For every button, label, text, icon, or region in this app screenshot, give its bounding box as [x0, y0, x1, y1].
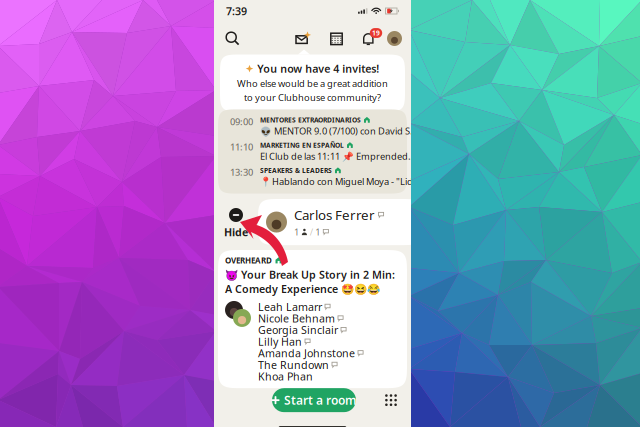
staticText: Nicole Behnam: [258, 311, 335, 325]
staticText: 📍Hablando con Miguel Moya - "Lid…: [260, 175, 420, 188]
staticText: OVERHEARD: [225, 255, 272, 266]
staticText: MENTORES EXTRAORDINARIOS: [260, 115, 361, 124]
staticText: Lilly Han: [258, 334, 302, 349]
staticText: to your Clubhouse community?: [244, 91, 381, 103]
staticText: Khoa Phan: [258, 369, 313, 383]
staticText: 11:10: [230, 141, 253, 153]
staticText: El Club de las 11:11 📌 Emprended…: [260, 150, 415, 162]
staticText: 1: [315, 226, 320, 238]
staticText: Start a room: [284, 392, 357, 408]
button[interactable]: Notifications: [361, 31, 376, 46]
button[interactable]: Hide: [214, 199, 258, 239]
staticText: 19: [372, 29, 380, 37]
staticText: /: [310, 226, 313, 238]
staticText: 09:00: [230, 115, 253, 128]
staticText: The Rundown: [258, 358, 329, 372]
staticText: SPEAKERS & LEADERS: [260, 166, 332, 175]
button[interactable]: More: [381, 390, 401, 410]
staticText: 13:30: [230, 166, 253, 178]
staticText: Carlos Ferrer: [294, 206, 375, 224]
button[interactable]: Invites: [293, 29, 312, 48]
staticText: Amanda Johnstone: [258, 346, 355, 360]
staticText: Who else would be a great addition: [237, 77, 388, 90]
staticText: 😈 Your Break Up Story in 2 Min: A Comedy…: [225, 268, 395, 296]
button[interactable]: 13:30: [231, 166, 403, 188]
staticText: Georgia Sinclair: [258, 323, 338, 337]
staticText: 7:39: [226, 4, 247, 18]
staticText: 👽 MENTOR 9.0 (7/100) con David S…: [260, 125, 417, 137]
button[interactable]: Carlos Ferrer: [258, 199, 423, 245]
button[interactable]: Profile: [387, 31, 402, 46]
button[interactable]: OVERHEARD: [218, 250, 407, 388]
button[interactable]: Search: [223, 29, 242, 48]
button[interactable]: 11:10: [231, 141, 403, 162]
staticText: You now have 4 invites!: [257, 61, 379, 76]
button[interactable]: Start a room: [272, 388, 356, 412]
staticText: MARKETING EN ESPAÑOL: [260, 141, 344, 149]
button[interactable]: Upcoming: [328, 30, 345, 47]
staticText: 1: [294, 226, 299, 238]
staticText: Leah Lamarr: [258, 300, 322, 314]
button[interactable]: 09:00: [231, 115, 403, 137]
staticText: Hide: [224, 225, 248, 239]
